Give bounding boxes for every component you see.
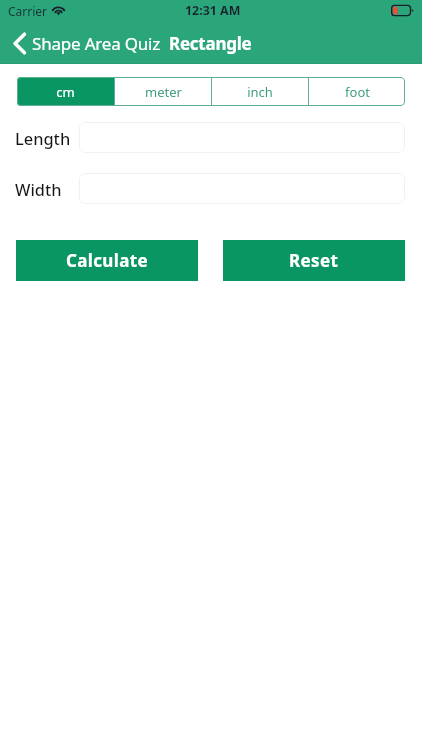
staticText: Shape Area Quiz — [32, 32, 161, 55]
staticText: foot — [345, 83, 370, 101]
staticText: Width — [15, 178, 62, 200]
staticText: Rectangle — [169, 32, 252, 55]
button[interactable]: meter — [115, 77, 211, 106]
staticText: Reset — [289, 249, 339, 272]
button[interactable]: cm — [17, 77, 114, 106]
button[interactable]: Back — [10, 27, 29, 60]
staticText: Calculate — [66, 249, 148, 272]
button[interactable]: foot — [309, 77, 405, 106]
staticText: Length — [15, 127, 71, 149]
staticText: 12:31 AM — [185, 2, 241, 19]
button[interactable]: inch — [212, 77, 308, 106]
button[interactable] — [79, 122, 405, 153]
staticText: inch — [247, 83, 273, 101]
staticText: Carrier — [8, 3, 48, 19]
button[interactable] — [79, 173, 405, 204]
staticText: cm — [56, 83, 75, 101]
button[interactable]: Calculate — [16, 240, 198, 281]
button[interactable]: Reset — [223, 240, 405, 281]
staticText: meter — [145, 83, 182, 101]
